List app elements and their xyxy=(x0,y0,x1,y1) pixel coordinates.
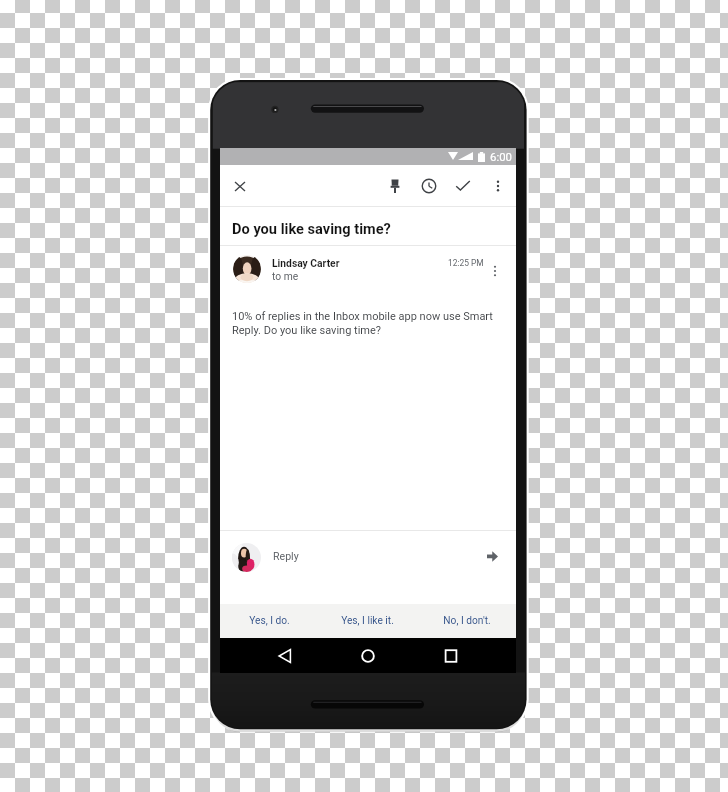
staticText: to me xyxy=(272,270,299,282)
button[interactable]: Yes, I do. xyxy=(220,604,318,638)
button[interactable]: Reply xyxy=(220,531,516,604)
button[interactable]: More options xyxy=(485,173,511,199)
button[interactable]: Done xyxy=(450,173,476,199)
button[interactable]: Close xyxy=(226,172,254,200)
staticText: Yes, I do. xyxy=(249,615,290,627)
button[interactable]: Yes, I like it. xyxy=(318,604,417,638)
staticText: 10% of replies in the Inbox mobile app n… xyxy=(232,310,494,337)
staticText: 6:00 xyxy=(490,150,512,163)
button[interactable]: Home xyxy=(352,638,384,673)
button[interactable]: Recent apps xyxy=(435,638,467,673)
staticText: Lindsay Carter xyxy=(272,257,340,269)
staticText: Do you like saving time? xyxy=(232,220,391,237)
button[interactable]: Send xyxy=(481,545,504,568)
button[interactable]: No, I don't. xyxy=(417,604,516,638)
staticText: Reply xyxy=(273,550,299,562)
staticText: No, I don't. xyxy=(443,615,491,627)
staticText: Yes, I like it. xyxy=(341,615,394,627)
button[interactable]: Snooze xyxy=(416,173,442,199)
staticText: 12:25 PM xyxy=(448,258,484,268)
button[interactable]: Back xyxy=(269,638,301,673)
button[interactable]: Message options xyxy=(484,260,506,282)
button[interactable]: Pin xyxy=(382,173,408,199)
